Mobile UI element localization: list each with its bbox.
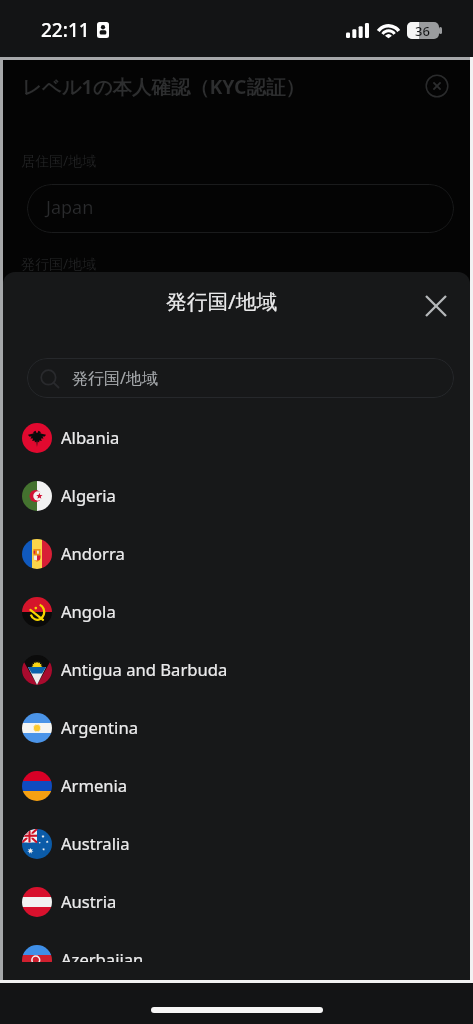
staticText: 発行国/地域 xyxy=(72,367,158,389)
button[interactable]: Albania xyxy=(3,409,470,467)
button[interactable]: Armenia xyxy=(3,757,470,815)
staticText: Albania xyxy=(61,426,120,449)
staticText: Azerbaijan xyxy=(61,948,144,962)
staticText: レベル1の本人確認（KYC認証） xyxy=(22,73,305,99)
staticText: Algeria xyxy=(61,484,116,507)
button[interactable]: 発行国/地域 xyxy=(27,358,454,398)
button[interactable]: Algeria xyxy=(3,467,470,525)
staticText: 22:11 xyxy=(41,17,90,43)
staticText: Argentina xyxy=(61,716,138,739)
staticText: 36 xyxy=(415,22,430,39)
button[interactable]: Andorra xyxy=(3,525,470,583)
button[interactable]: Australia xyxy=(3,815,470,873)
button[interactable]: Close xyxy=(422,71,452,101)
staticText: 発行国/地域 xyxy=(166,287,278,315)
staticText: Angola xyxy=(61,600,116,623)
staticText: Armenia xyxy=(61,774,128,797)
button[interactable]: Antigua and Barbuda xyxy=(3,641,470,699)
button[interactable]: Close xyxy=(419,289,452,322)
button[interactable]: Angola xyxy=(3,583,470,641)
staticText: 発行国/地域 xyxy=(21,254,97,273)
staticText: Andorra xyxy=(61,542,125,565)
staticText: Antigua and Barbuda xyxy=(61,658,228,681)
staticText: Austria xyxy=(61,890,117,913)
button[interactable]: Austria xyxy=(3,873,470,931)
staticText: Japan xyxy=(46,195,94,220)
button[interactable]: Argentina xyxy=(3,699,470,757)
button[interactable]: Japan xyxy=(27,184,454,233)
button[interactable]: Azerbaijan xyxy=(3,931,470,962)
staticText: 居住国/地域 xyxy=(21,151,97,170)
staticText: Australia xyxy=(61,832,130,855)
